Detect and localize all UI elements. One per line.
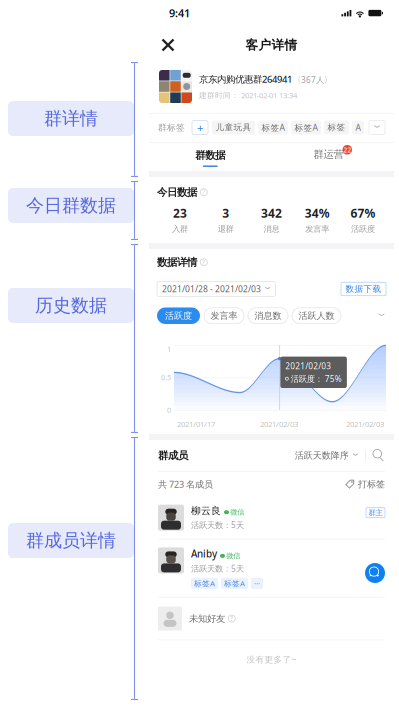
staticText: 活跃度 bbox=[165, 310, 192, 321]
staticText: 活跃度 bbox=[351, 224, 375, 234]
staticText: 2021/01/17 bbox=[177, 419, 215, 429]
staticText: 67% bbox=[351, 205, 376, 221]
staticText: 2021/02/03 bbox=[260, 419, 298, 429]
button[interactable]: Send message bbox=[365, 563, 385, 583]
staticText: 微信 bbox=[230, 508, 244, 516]
staticText: Aniby bbox=[191, 547, 217, 560]
staticText: 京东内购优惠群264941 bbox=[199, 73, 292, 85]
staticText: 2021/02/03 bbox=[285, 361, 331, 371]
button[interactable]: 京东内购优惠群264941 bbox=[149, 60, 394, 113]
staticText: 活跃天数：5天 bbox=[191, 563, 244, 574]
staticText: 0.5 bbox=[161, 373, 171, 382]
staticText: 微信 bbox=[226, 551, 240, 560]
staticText: 群成员详情 bbox=[26, 530, 116, 551]
staticText: 客户详情 bbox=[245, 37, 297, 52]
staticText: 入群 bbox=[172, 224, 188, 234]
staticText: 未知好友 bbox=[189, 613, 225, 624]
button[interactable]: 群数据 bbox=[149, 142, 271, 171]
staticText: A bbox=[355, 122, 360, 133]
staticText: 儿童玩具 bbox=[215, 122, 251, 133]
staticText: 群成员 bbox=[158, 449, 188, 462]
staticText: 群主 bbox=[368, 508, 382, 517]
staticText: 标签A bbox=[194, 578, 215, 588]
staticText: 0 bbox=[167, 405, 171, 415]
staticText: 退群 bbox=[218, 224, 234, 234]
button[interactable]: Close bbox=[157, 34, 179, 56]
staticText: 标签A bbox=[261, 122, 284, 133]
button[interactable]: 柳云良 bbox=[149, 497, 394, 539]
staticText: 1 bbox=[167, 344, 171, 354]
staticText: 打标签 bbox=[358, 479, 385, 490]
button[interactable]: Search members bbox=[373, 449, 385, 461]
staticText: 建群时间： 2021-02-01 13:34 bbox=[199, 90, 297, 100]
staticText: 34% bbox=[305, 205, 330, 221]
staticText: 〈367人〉 bbox=[293, 74, 332, 85]
button[interactable]: 消息数 bbox=[248, 308, 288, 324]
staticText: 群数据 bbox=[195, 149, 225, 161]
button[interactable]: 活跃天数降序 bbox=[295, 450, 358, 461]
button[interactable]: 打标签 bbox=[344, 479, 385, 490]
button[interactable]: 群运营 bbox=[271, 142, 394, 171]
staticText: 群运营 bbox=[313, 148, 343, 160]
staticText: ? bbox=[230, 615, 233, 622]
button[interactable]: 数据下载 bbox=[341, 282, 386, 296]
staticText: 群详情 bbox=[44, 108, 98, 129]
staticText: 历史数据 bbox=[35, 295, 107, 316]
staticText: 22 bbox=[343, 145, 351, 154]
button[interactable]: 活跃度 bbox=[157, 307, 200, 324]
staticText: 342 bbox=[261, 205, 282, 221]
staticText: 发言率 bbox=[305, 224, 329, 234]
staticText: 发言率 bbox=[210, 310, 237, 321]
staticText: 活跃人数 bbox=[298, 310, 334, 321]
button[interactable]: 2021/01/28 - 2021/02/03 bbox=[157, 281, 275, 296]
staticText: ? bbox=[202, 258, 205, 266]
staticText: 柳云良 bbox=[191, 505, 221, 516]
staticText: ? bbox=[202, 188, 205, 196]
staticText: 标签 bbox=[327, 122, 345, 133]
button[interactable]: 发言率 bbox=[204, 308, 244, 324]
staticText: 数据详情 bbox=[157, 256, 197, 268]
staticText: 今日数据 bbox=[157, 186, 197, 198]
button[interactable]: Add tag bbox=[192, 120, 208, 134]
button[interactable]: More metrics bbox=[377, 311, 386, 320]
staticText: + bbox=[197, 120, 203, 135]
staticText: 数据下载 bbox=[345, 284, 381, 294]
staticText: 2021/01/28 - 2021/02/03 bbox=[162, 283, 261, 294]
button[interactable]: Aniby bbox=[149, 539, 394, 597]
staticText: 没有更多了~ bbox=[246, 654, 296, 665]
staticText: 消息数 bbox=[254, 310, 281, 321]
button[interactable]: Expand tags bbox=[369, 120, 385, 134]
staticText: 群标签 bbox=[158, 122, 185, 133]
staticText: 活跃度： 75% bbox=[291, 373, 342, 384]
staticText: 活跃天数降序 bbox=[295, 450, 349, 461]
staticText: 23 bbox=[173, 205, 187, 221]
staticText: 3 bbox=[222, 205, 229, 221]
staticText: ··· bbox=[254, 578, 260, 588]
staticText: 今日群数据 bbox=[26, 195, 116, 216]
staticText: 共 723 名成员 bbox=[158, 478, 213, 490]
staticText: 9:41 bbox=[169, 6, 190, 20]
staticText: 标签A bbox=[224, 578, 245, 588]
button[interactable]: 活跃人数 bbox=[292, 308, 341, 324]
staticText: 消息 bbox=[263, 224, 279, 234]
staticText: 标签A bbox=[294, 122, 317, 133]
staticText: 2021/02/03 bbox=[346, 419, 384, 429]
staticText: 活跃天数：5天 bbox=[191, 519, 244, 530]
